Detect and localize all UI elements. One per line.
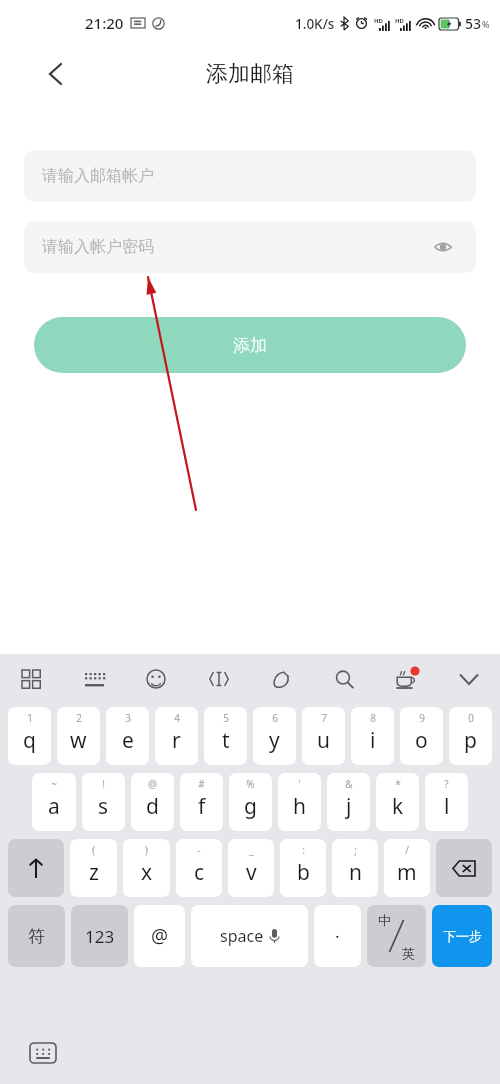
staticText: a [48, 792, 60, 821]
button[interactable]: 8 [351, 707, 394, 765]
staticText: g [244, 792, 257, 821]
button[interactable]: % [229, 773, 272, 831]
staticText: 7 [321, 711, 327, 725]
button[interactable]: Back [36, 55, 74, 93]
staticText: ) [145, 843, 148, 857]
staticText: 53 [465, 14, 482, 33]
staticText: 6 [272, 711, 278, 725]
button[interactable]: ~ [32, 773, 76, 831]
button[interactable]: 123 [71, 905, 128, 967]
staticText: 添加 [233, 335, 267, 356]
button[interactable]: / [384, 839, 430, 897]
staticText: 123 [85, 925, 115, 948]
button[interactable]: # [180, 773, 223, 831]
staticText: 8 [370, 711, 376, 725]
staticText: n [349, 858, 362, 887]
staticText: o [415, 726, 428, 755]
button[interactable]: * [376, 773, 419, 831]
button[interactable]: Show password [428, 232, 458, 262]
button[interactable]: 6 [253, 707, 296, 765]
staticText: y [269, 726, 280, 755]
button[interactable]: ! [82, 773, 125, 831]
button[interactable]: 符 [8, 905, 65, 967]
button[interactable]: Keyboard [77, 662, 111, 696]
staticText: 下一步 [443, 928, 482, 944]
button[interactable]: 7 [302, 707, 345, 765]
staticText: @ [151, 923, 169, 949]
button[interactable]: 请输入帐户密码 [24, 221, 476, 273]
button[interactable]: 2 [57, 707, 100, 765]
staticText: ( [92, 843, 95, 857]
button[interactable]: 1 [8, 707, 51, 765]
button[interactable]: 添加 [34, 317, 466, 373]
staticText: @ [148, 777, 157, 791]
button[interactable]: ' [278, 773, 321, 831]
button[interactable]: Grid [14, 662, 48, 696]
button[interactable]: 3 [106, 707, 149, 765]
staticText: e [122, 726, 134, 755]
staticText: f [198, 792, 206, 821]
staticText: 符 [28, 926, 45, 947]
staticText: q [23, 726, 36, 755]
staticText: / [405, 843, 409, 857]
staticText: 3 [125, 711, 131, 725]
staticText: v [246, 858, 257, 887]
staticText: 英 [402, 945, 415, 961]
staticText: x [141, 858, 153, 887]
staticText: 1.0K/s [295, 15, 335, 33]
button[interactable]: Backspace [436, 839, 492, 897]
staticText: ' [298, 777, 301, 791]
button[interactable]: @ [134, 905, 185, 967]
button[interactable]: 5 [204, 707, 247, 765]
button[interactable]: Clip [264, 662, 298, 696]
button[interactable]: Emoji [139, 662, 173, 696]
staticText: 请输入邮箱帐户 [42, 166, 154, 186]
staticText: 2 [76, 711, 82, 725]
button[interactable]: 中 [367, 905, 426, 967]
button[interactable]: ( [70, 839, 117, 897]
staticText: c [194, 858, 205, 887]
button[interactable]: Collapse [452, 662, 486, 696]
button[interactable]: · [314, 905, 361, 967]
staticText: space [220, 925, 264, 947]
staticText: d [146, 792, 159, 821]
staticText: · [335, 925, 340, 948]
button[interactable]: space [191, 905, 308, 967]
staticText: % [246, 777, 255, 791]
button[interactable]: 0 [449, 707, 492, 765]
button[interactable]: Search [327, 662, 361, 696]
staticText: 5 [223, 711, 229, 725]
button[interactable]: Cursor [202, 662, 236, 696]
button[interactable]: _ [228, 839, 274, 897]
staticText: j [346, 792, 352, 821]
button[interactable]: 4 [155, 707, 198, 765]
staticText: _ [249, 843, 254, 857]
staticText: ? [444, 777, 449, 791]
button[interactable]: 9 [400, 707, 443, 765]
button[interactable]: ? [425, 773, 468, 831]
staticText: 4 [174, 711, 180, 725]
button[interactable]: Shift [8, 839, 64, 897]
button[interactable]: Theme [389, 662, 423, 696]
button[interactable]: ) [123, 839, 170, 897]
staticText: - [197, 843, 201, 857]
staticText: % [482, 18, 490, 30]
button[interactable]: 下一步 [432, 905, 492, 967]
staticText: s [98, 792, 109, 821]
staticText: HD [395, 17, 404, 25]
staticText: 添加邮箱 [206, 60, 294, 88]
staticText: z [89, 858, 99, 887]
button[interactable]: @ [131, 773, 174, 831]
button[interactable]: - [176, 839, 222, 897]
staticText: r [172, 726, 181, 755]
button[interactable]: Hide keyboard [26, 1036, 60, 1070]
staticText: p [464, 726, 477, 755]
button[interactable]: 请输入邮箱帐户 [24, 150, 476, 202]
staticText: 9 [419, 711, 425, 725]
button[interactable]: & [327, 773, 370, 831]
button[interactable]: : [280, 839, 326, 897]
button[interactable]: ; [332, 839, 378, 897]
staticText: h [293, 792, 306, 821]
staticText: 0 [468, 711, 474, 725]
staticText: * [395, 777, 401, 791]
